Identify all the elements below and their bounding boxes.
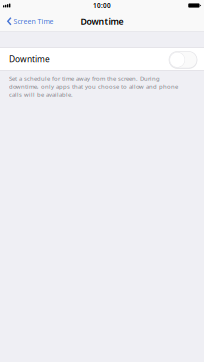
button[interactable]: Screen Time	[0, 11, 58, 31]
staticText: Screen Time	[13, 16, 53, 26]
button[interactable]: Downtime	[0, 47, 204, 70]
staticText: Downtime	[9, 53, 50, 65]
staticText: 10:00	[93, 1, 111, 10]
staticText: Downtime	[80, 15, 123, 27]
staticText: Set a schedule for time away from the sc…	[9, 74, 178, 98]
